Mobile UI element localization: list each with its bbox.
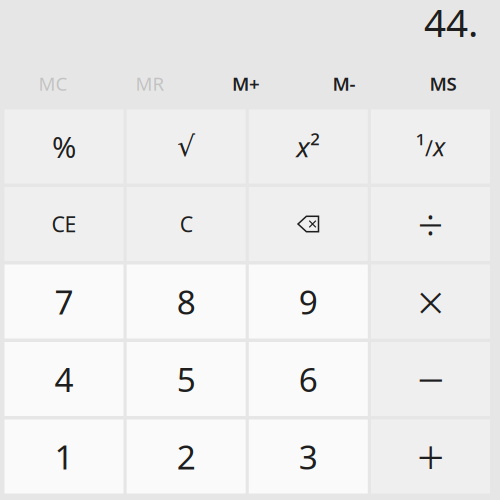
button[interactable]: 3 bbox=[249, 419, 368, 493]
button[interactable]: C bbox=[127, 187, 246, 261]
staticText: M- bbox=[332, 71, 355, 96]
staticText: % bbox=[52, 127, 76, 166]
button[interactable]: % bbox=[4, 109, 123, 183]
button[interactable]: 2 bbox=[127, 419, 246, 493]
button[interactable]: + bbox=[371, 419, 490, 493]
staticText: + bbox=[417, 425, 444, 488]
button[interactable]: 9 bbox=[249, 264, 368, 338]
button[interactable]: 5 bbox=[127, 342, 246, 416]
staticText: 1 bbox=[54, 434, 73, 479]
staticText: MS bbox=[429, 71, 456, 96]
button[interactable]: MC bbox=[5, 64, 101, 102]
button[interactable]: 8 bbox=[127, 264, 246, 338]
staticText: C bbox=[180, 210, 193, 238]
staticText: 2 bbox=[177, 434, 196, 479]
staticText: ¹/x bbox=[416, 130, 445, 163]
button[interactable]: ¹/x bbox=[371, 109, 490, 183]
staticText: 7 bbox=[54, 279, 73, 324]
staticText: MR bbox=[135, 71, 164, 96]
button[interactable]: × bbox=[371, 264, 490, 338]
button[interactable]: M- bbox=[296, 64, 392, 102]
staticText: 8 bbox=[177, 279, 196, 324]
button[interactable]: M+ bbox=[198, 64, 294, 102]
staticText: 5 bbox=[177, 357, 196, 401]
button[interactable]: x² bbox=[249, 109, 368, 183]
staticText: 44. bbox=[424, 0, 478, 48]
staticText: 9 bbox=[299, 279, 318, 324]
staticText: M+ bbox=[232, 71, 260, 96]
button[interactable]: ÷ bbox=[371, 187, 490, 261]
staticText: − bbox=[417, 347, 444, 411]
button[interactable]: 7 bbox=[4, 264, 123, 338]
button[interactable]: √ bbox=[127, 109, 246, 183]
button[interactable]: 1 bbox=[4, 419, 123, 493]
staticText: √ bbox=[177, 131, 195, 162]
button[interactable]: MS bbox=[395, 64, 491, 102]
button[interactable]: 6 bbox=[249, 342, 368, 416]
staticText: 3 bbox=[299, 434, 318, 479]
button[interactable] bbox=[249, 187, 368, 261]
button[interactable]: − bbox=[371, 342, 490, 416]
staticText: x² bbox=[296, 128, 320, 165]
button[interactable]: 4 bbox=[4, 342, 123, 416]
staticText: 6 bbox=[299, 357, 318, 401]
button[interactable]: MR bbox=[102, 64, 198, 102]
staticText: MC bbox=[38, 71, 67, 96]
staticText: × bbox=[417, 270, 444, 333]
staticText: 4 bbox=[54, 357, 73, 401]
staticText: CE bbox=[51, 210, 76, 238]
button[interactable]: CE bbox=[4, 187, 123, 261]
staticText: ÷ bbox=[417, 194, 443, 254]
